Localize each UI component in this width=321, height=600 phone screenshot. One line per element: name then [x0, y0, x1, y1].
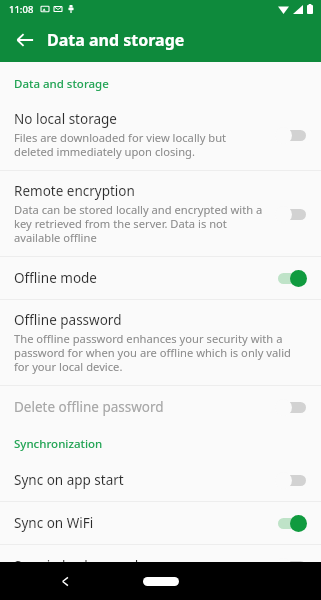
staticText: 11:08 [9, 3, 34, 16]
staticText: Sync in background [14, 557, 139, 575]
staticText: Sync on app start [14, 471, 124, 489]
button[interactable]: Back [52, 568, 78, 594]
button[interactable]: Off [275, 397, 309, 417]
staticText: Sync on WiFi [14, 514, 94, 532]
staticText: Files are downloaded for view locally bu… [14, 130, 265, 159]
staticText: Offline password [14, 311, 122, 329]
staticText: No local storage [14, 110, 117, 128]
button[interactable]: Home [133, 570, 189, 592]
button[interactable]: Sync in background [0, 545, 321, 587]
button[interactable]: Offline password [0, 300, 321, 385]
button[interactable]: Off [275, 125, 309, 145]
button[interactable]: On [275, 268, 309, 288]
button[interactable]: Remote encryption [0, 171, 321, 256]
staticText: Remote encryption [14, 182, 135, 200]
staticText: Delete offline password [14, 398, 164, 416]
staticText: Data can be stored locally and encrypted… [14, 202, 265, 245]
staticText: Data and storage [14, 76, 109, 92]
button[interactable]: Back [6, 21, 44, 59]
button[interactable]: Offline mode [0, 257, 321, 299]
staticText: Offline mode [14, 269, 97, 287]
button[interactable]: Delete offline password [0, 386, 321, 428]
button[interactable]: Off [275, 470, 309, 490]
button[interactable]: Sync on WiFi [0, 502, 321, 544]
staticText: Synchronization [14, 436, 103, 452]
button[interactable]: Sync on app start [0, 459, 321, 501]
staticText: The offline password enhances your secur… [14, 331, 309, 374]
button[interactable]: Off [275, 204, 309, 224]
button[interactable]: Off [275, 556, 309, 576]
button[interactable]: No local storage [0, 99, 321, 170]
button[interactable]: On [275, 513, 309, 533]
staticText: Data and storage [47, 29, 185, 51]
